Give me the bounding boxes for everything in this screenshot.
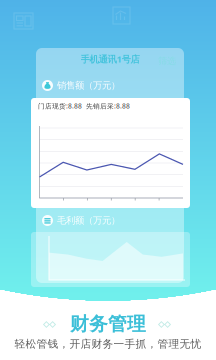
staticText: 手机通讯1号店: [80, 53, 139, 65]
staticText: 财务管理: [70, 312, 146, 335]
button[interactable]: 手机通讯1号店: [36, 52, 184, 66]
staticText: 轻松管钱，开店财务一手抓，管理无忧: [14, 337, 201, 350]
button[interactable]: 筛选: [158, 56, 176, 66]
staticText: 销售额（万元）: [57, 80, 120, 91]
staticText: 筛选: [158, 55, 176, 67]
staticText: 毛利额（万元）: [57, 215, 120, 226]
staticText: 门店现货:8.88 先销后采:8.88: [38, 102, 130, 110]
